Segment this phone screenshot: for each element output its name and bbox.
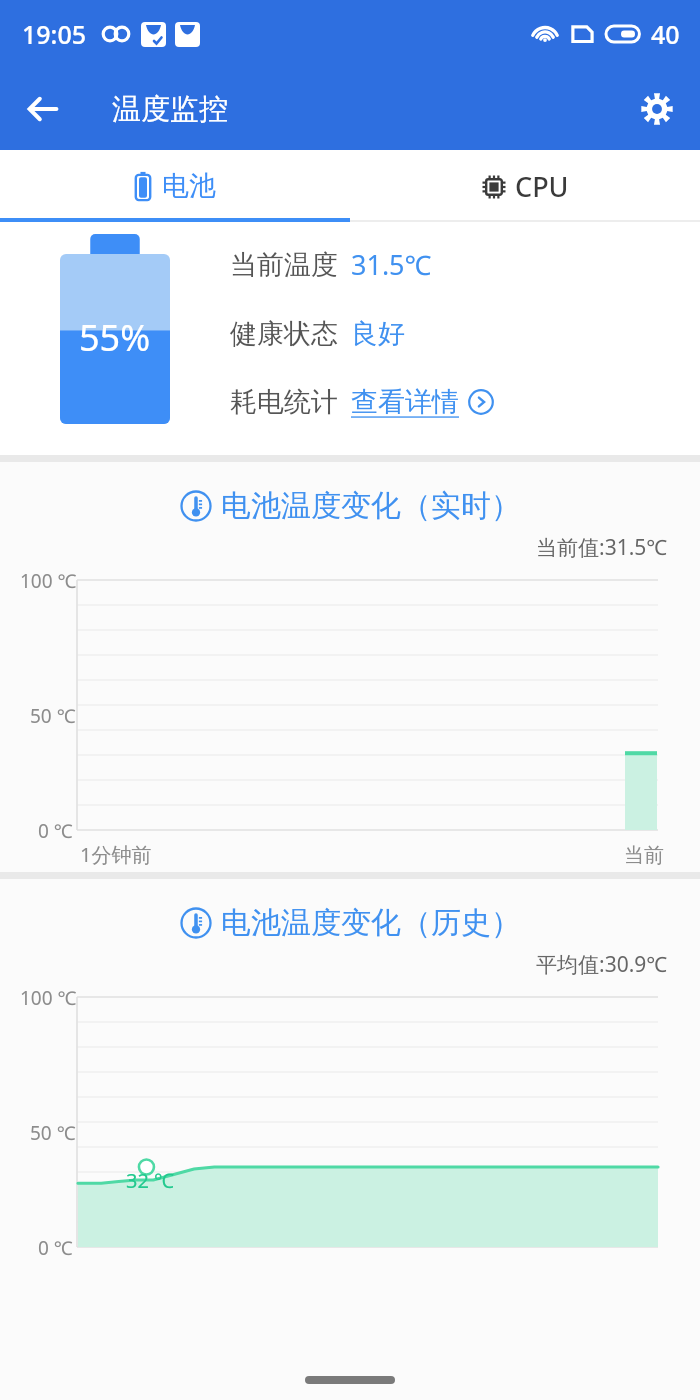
staticText: 19:05 <box>22 17 87 51</box>
staticText: 电池温度变化（实时） <box>221 487 521 525</box>
button[interactable]: CPU <box>350 150 700 222</box>
button[interactable]: 耗电统计 <box>230 385 494 419</box>
staticText: 31.5℃ <box>351 246 432 283</box>
button[interactable]: Back <box>14 80 72 138</box>
staticText: 50 ℃ <box>30 703 76 729</box>
staticText: 耗电统计 <box>230 385 338 419</box>
staticText: 32 ℃ <box>126 1167 174 1194</box>
staticText: 100 ℃ <box>20 985 77 1011</box>
staticText: 0 ℃ <box>38 818 73 844</box>
staticText: 电池 <box>162 169 216 203</box>
staticText: 当前 <box>624 843 664 868</box>
staticText: 50 ℃ <box>30 1120 76 1146</box>
staticText: 平均值:30.9℃ <box>536 950 668 979</box>
staticText: 0 ℃ <box>38 1235 73 1261</box>
staticText: 当前温度 <box>230 248 338 282</box>
staticText: 温度监控 <box>112 91 228 128</box>
staticText: 查看详情 <box>351 385 459 419</box>
staticText: 100 ℃ <box>20 568 77 594</box>
staticText: 55% <box>79 313 151 362</box>
staticText: 当前值:31.5℃ <box>536 533 668 562</box>
button[interactable]: 电池 <box>0 150 350 222</box>
staticText: 1分钟前 <box>80 841 152 868</box>
staticText: 良好 <box>351 317 405 351</box>
button[interactable]: Settings <box>628 80 686 138</box>
staticText: 电池温度变化（历史） <box>221 904 521 942</box>
staticText: 40 <box>651 17 680 51</box>
staticText: CPU <box>515 168 569 205</box>
staticText: 健康状态 <box>230 317 338 351</box>
